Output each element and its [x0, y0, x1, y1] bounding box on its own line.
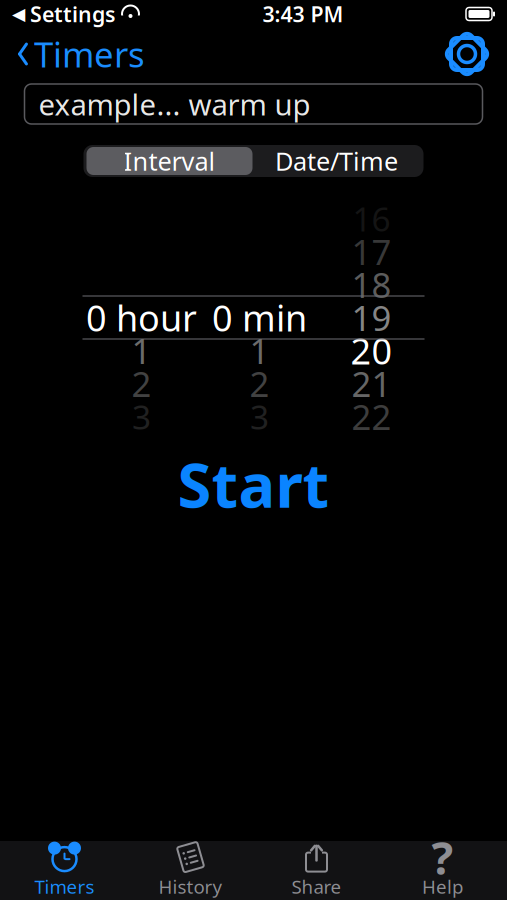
staticText: 1 [131, 327, 151, 373]
staticText: 0 min [212, 294, 307, 341]
staticText: 1 [249, 327, 269, 373]
button[interactable]: Settings [447, 28, 507, 80]
staticText: 21 [351, 360, 391, 406]
staticText: Interval [123, 144, 215, 178]
button[interactable]: Timers [0, 23, 145, 85]
staticText: 3:43 PM [262, 0, 343, 28]
staticText: 18 [351, 261, 391, 307]
staticText: Settings [30, 0, 116, 28]
staticText: Start [177, 443, 329, 525]
staticText: example... warm up [38, 84, 310, 123]
staticText: 2 [131, 360, 151, 406]
button[interactable]: Share [253, 841, 379, 900]
staticText: Date/Time [275, 144, 398, 178]
staticText: History [158, 874, 222, 899]
staticText: 0 hour [86, 294, 197, 341]
button[interactable]: Timers [1, 841, 127, 900]
staticText: ◀ [12, 4, 25, 24]
staticText: 20 [350, 327, 392, 374]
staticText: Share [291, 874, 341, 899]
button[interactable]: Start [138, 454, 368, 514]
staticText: ? [431, 827, 453, 887]
staticText: 19 [351, 294, 391, 340]
staticText: 2 [249, 360, 269, 406]
staticText: Timers [34, 874, 94, 899]
staticText: Timers [34, 31, 145, 77]
staticText: Help [422, 874, 463, 899]
staticText: 17 [351, 228, 391, 274]
staticText: 16 [352, 196, 390, 241]
button[interactable]: History [127, 841, 253, 900]
staticText: 22 [351, 393, 391, 439]
button[interactable]: example... warm up [24, 84, 482, 124]
button[interactable]: ? [379, 841, 505, 900]
button[interactable]: Interval [86, 147, 252, 175]
button[interactable]: Date/Time [252, 147, 420, 175]
staticText: 3 [132, 394, 151, 439]
staticText: 3 [250, 394, 269, 439]
